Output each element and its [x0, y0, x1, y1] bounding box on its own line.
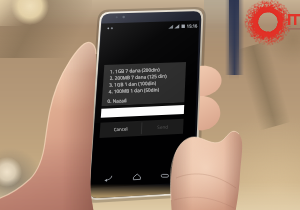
button[interactable]: Phone in hand showing a USSD reply dialo… — [0, 0, 300, 210]
